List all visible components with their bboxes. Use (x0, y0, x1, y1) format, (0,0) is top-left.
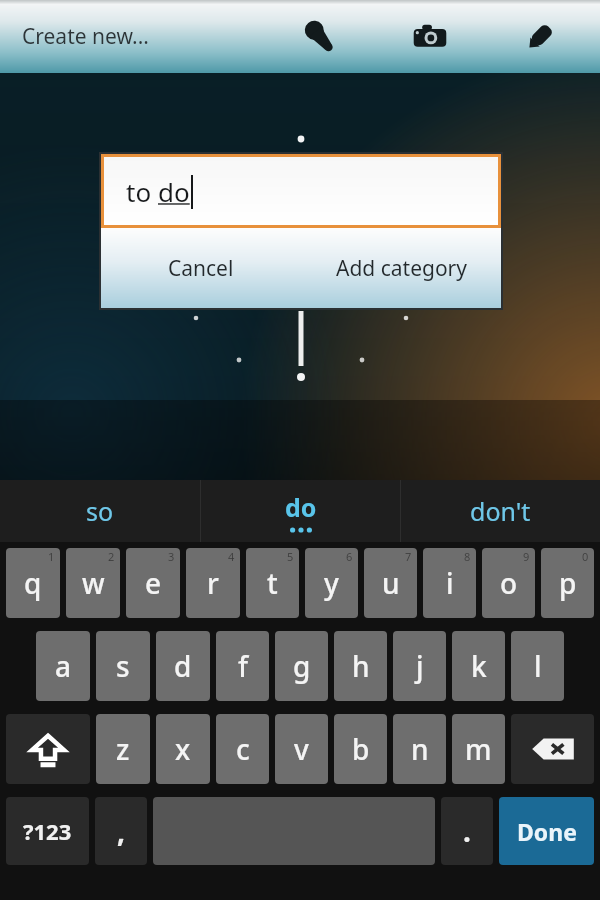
staticText: o (500, 564, 518, 602)
staticText: h (352, 647, 370, 685)
button[interactable]: j (393, 631, 446, 701)
button[interactable]: do (201, 480, 400, 542)
staticText: 6 (346, 549, 353, 564)
button[interactable]: c (216, 714, 269, 784)
staticText: 1 (48, 549, 55, 564)
button[interactable]: . (441, 797, 493, 865)
staticText: . (463, 812, 471, 850)
staticText: Add category (336, 254, 467, 283)
staticText: m (465, 730, 492, 768)
button[interactable]: k (452, 631, 505, 701)
staticText: 0 (582, 549, 589, 564)
button[interactable]: Write note (512, 9, 568, 65)
staticText: y (324, 564, 339, 602)
staticText: e (145, 564, 162, 602)
button[interactable]: q (6, 548, 60, 618)
button[interactable]: Create new... (22, 22, 149, 51)
button[interactable]: u (364, 548, 417, 618)
staticText: b (352, 730, 370, 768)
button[interactable]: x (156, 714, 210, 784)
button[interactable]: to (104, 157, 498, 225)
button[interactable]: m (452, 714, 505, 784)
button[interactable]: Backspace (511, 714, 594, 784)
staticText: l (534, 647, 542, 685)
button[interactable]: o (482, 548, 535, 618)
staticText: d (174, 647, 192, 685)
button[interactable]: g (275, 631, 328, 701)
button[interactable]: p (541, 548, 594, 618)
staticText: don't (470, 494, 531, 528)
staticText: n (411, 730, 429, 768)
button[interactable]: Done (499, 797, 594, 865)
button[interactable]: , (95, 797, 147, 865)
button[interactable]: z (96, 714, 150, 784)
staticText: to (126, 174, 158, 209)
staticText: u (382, 564, 400, 602)
button[interactable]: w (66, 548, 120, 618)
button[interactable]: d (156, 631, 210, 701)
button[interactable]: r (186, 548, 240, 618)
staticText: x (175, 730, 191, 768)
button[interactable]: t (246, 548, 299, 618)
staticText: do (158, 174, 190, 209)
staticText: 5 (287, 549, 294, 564)
button[interactable]: v (275, 714, 328, 784)
button[interactable]: a (36, 631, 90, 701)
staticText: 9 (523, 549, 530, 564)
staticText: 7 (405, 549, 412, 564)
staticText: r (207, 564, 219, 602)
staticText: 3 (168, 549, 175, 564)
button[interactable]: Add category (301, 228, 501, 308)
staticText: g (293, 647, 311, 685)
button[interactable]: Shift (6, 714, 90, 784)
staticText: t (267, 564, 278, 602)
staticText: v (294, 730, 309, 768)
button[interactable]: Voice recording (292, 9, 348, 65)
staticText: s (116, 647, 130, 685)
button[interactable]: h (334, 631, 387, 701)
staticText: a (55, 647, 72, 685)
staticText: q (24, 564, 42, 602)
staticText: j (416, 647, 424, 685)
button[interactable]: b (334, 714, 387, 784)
button[interactable]: so (0, 480, 200, 542)
staticText: so (86, 494, 114, 528)
button[interactable]: e (126, 548, 180, 618)
button[interactable]: don't (401, 480, 600, 542)
staticText: p (559, 564, 577, 602)
button[interactable]: y (305, 548, 358, 618)
staticText: 2 (108, 549, 115, 564)
staticText: 4 (228, 549, 235, 564)
button[interactable]: s (96, 631, 150, 701)
staticText: i (446, 564, 454, 602)
staticText: , (117, 812, 125, 850)
button[interactable]: f (216, 631, 269, 701)
button[interactable]: i (423, 548, 476, 618)
staticText: ?123 (23, 816, 72, 846)
staticText: c (236, 730, 250, 768)
staticText: f (238, 647, 248, 685)
staticText: Cancel (168, 254, 234, 283)
button[interactable]: Cancel (101, 228, 301, 308)
staticText: z (116, 730, 130, 768)
staticText: 8 (464, 549, 471, 564)
button[interactable]: Take photo (402, 9, 458, 65)
staticText: w (82, 564, 105, 602)
staticText: k (471, 647, 487, 685)
button[interactable]: n (393, 714, 446, 784)
staticText: Done (517, 816, 577, 847)
staticText: do (285, 490, 317, 524)
button[interactable]: ?123 (6, 797, 89, 865)
button[interactable]: l (511, 631, 564, 701)
